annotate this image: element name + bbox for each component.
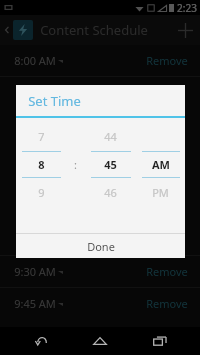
button[interactable]: 7	[16, 127, 66, 146]
staticText: Done	[87, 239, 115, 254]
staticText: Content Schedule	[40, 21, 148, 39]
button[interactable]: 44	[85, 127, 136, 146]
staticText: 46	[104, 185, 117, 200]
staticText: 44	[104, 129, 117, 144]
button[interactable]: AM	[136, 151, 185, 178]
button[interactable]: 8:00 AM	[0, 45, 200, 76]
button[interactable]: Remove	[134, 259, 200, 284]
staticText: 8	[38, 157, 45, 172]
staticText: PM	[152, 185, 169, 200]
button[interactable]: Recent apps	[141, 327, 179, 355]
staticText: 9:45 AM	[14, 296, 56, 311]
staticText: 2:23	[177, 1, 197, 15]
staticText: :	[74, 157, 77, 172]
button[interactable]: 8	[16, 151, 66, 178]
button[interactable]: 46	[85, 183, 136, 202]
staticText: Remove	[146, 53, 188, 68]
button[interactable]: Remove	[134, 48, 200, 73]
button[interactable]: 9	[16, 183, 66, 202]
button[interactable]: PM	[136, 183, 185, 202]
button[interactable]: Done	[16, 234, 185, 258]
staticText: Remove	[146, 264, 188, 279]
button[interactable]: Back	[22, 327, 60, 355]
button[interactable]: 9:30 AM	[0, 256, 200, 287]
button[interactable]: 9:45 AM	[0, 288, 200, 319]
button[interactable]: Home	[81, 327, 119, 355]
button[interactable]: Navigate up	[0, 15, 13, 45]
staticText: 9	[38, 185, 45, 200]
staticText: Remove	[146, 296, 188, 311]
staticText: 7	[38, 129, 45, 144]
staticText: AM	[152, 157, 170, 172]
staticText: 8:00 AM	[14, 53, 56, 68]
staticText: Set Time	[28, 92, 81, 110]
staticText: 45	[104, 157, 117, 172]
button[interactable]: 45	[85, 151, 136, 178]
staticText: 9:30 AM	[14, 264, 56, 279]
button[interactable]: Remove	[134, 291, 200, 316]
button[interactable]: Add	[170, 15, 200, 45]
